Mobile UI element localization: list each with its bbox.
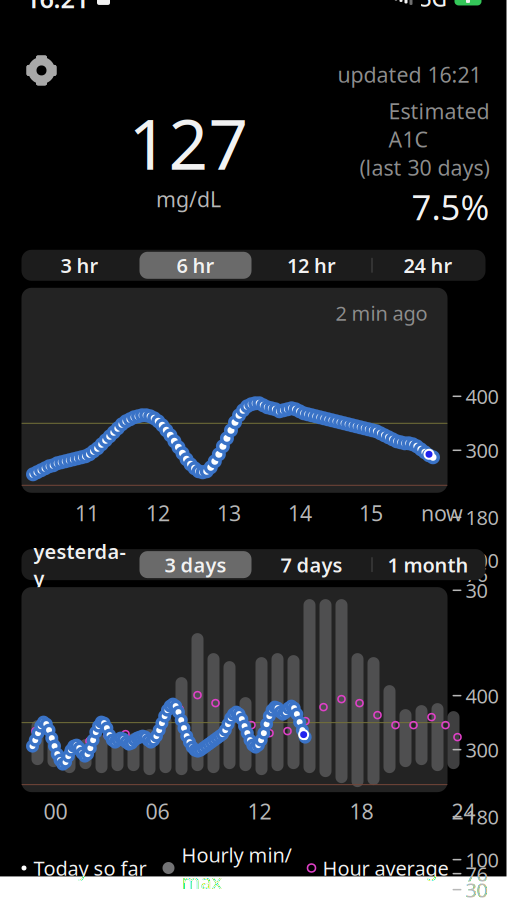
staticText: 16:21 bbox=[25, 0, 88, 15]
button[interactable]: 12 hr bbox=[253, 252, 369, 279]
staticText: now bbox=[421, 499, 463, 527]
staticText: 1 month bbox=[387, 551, 468, 578]
staticText: 127 bbox=[128, 97, 248, 189]
staticText: 15 bbox=[359, 499, 383, 527]
staticText: 180 bbox=[465, 803, 498, 830]
staticText: updated 16:21 bbox=[337, 60, 481, 89]
staticText: 13 bbox=[217, 499, 241, 527]
button[interactable]: Settings bbox=[25, 46, 57, 86]
button[interactable]: 24 hr bbox=[369, 252, 485, 279]
staticText: 3 hr bbox=[60, 252, 98, 279]
staticText: Today so far bbox=[33, 855, 146, 881]
staticText: 3 days bbox=[164, 551, 226, 578]
staticText: yesterday bbox=[33, 538, 125, 591]
staticText: 5G bbox=[419, 0, 447, 13]
staticText: 30 bbox=[465, 876, 487, 900]
staticText: 30 bbox=[465, 577, 487, 604]
staticText: 100 bbox=[465, 547, 498, 574]
staticText: 400 bbox=[465, 383, 498, 410]
staticText: 14 bbox=[288, 499, 312, 527]
staticText: 7.5% bbox=[411, 184, 489, 230]
staticText: 76 bbox=[465, 561, 487, 588]
staticText: 12 bbox=[146, 499, 170, 527]
staticText: 24 hr bbox=[403, 252, 452, 279]
staticText: 300 bbox=[465, 736, 498, 763]
staticText: 2 min ago bbox=[335, 300, 427, 326]
staticText: 00 bbox=[43, 797, 67, 825]
staticText: Hour average bbox=[322, 855, 448, 881]
button[interactable]: 3 days bbox=[137, 551, 253, 578]
staticText: (last 30 days) bbox=[359, 153, 489, 182]
staticText: 180 bbox=[465, 504, 498, 531]
staticText: 24 bbox=[451, 797, 475, 825]
staticText: 12 bbox=[247, 797, 271, 825]
staticText: 76 bbox=[465, 860, 487, 887]
staticText: 400 bbox=[465, 682, 498, 709]
staticText: 06 bbox=[145, 797, 169, 825]
button[interactable]: yesterday bbox=[21, 551, 137, 578]
staticText: 11 bbox=[75, 499, 99, 527]
staticText: 7 days bbox=[280, 551, 342, 578]
button[interactable]: 3 hr bbox=[21, 252, 137, 279]
staticText: 100 bbox=[465, 846, 498, 873]
staticText: mg/dL bbox=[156, 185, 221, 213]
staticText: 18 bbox=[349, 797, 373, 825]
staticText: Estimated A1C bbox=[388, 97, 489, 153]
button[interactable]: 1 month bbox=[369, 551, 485, 578]
staticText: 12 hr bbox=[287, 252, 336, 279]
button[interactable]: 7 days bbox=[253, 551, 369, 578]
staticText: 300 bbox=[465, 437, 498, 464]
button[interactable]: 6 hr bbox=[137, 252, 253, 279]
staticText: 6 hr bbox=[176, 252, 214, 279]
staticText: Hourly min/max bbox=[181, 841, 291, 894]
